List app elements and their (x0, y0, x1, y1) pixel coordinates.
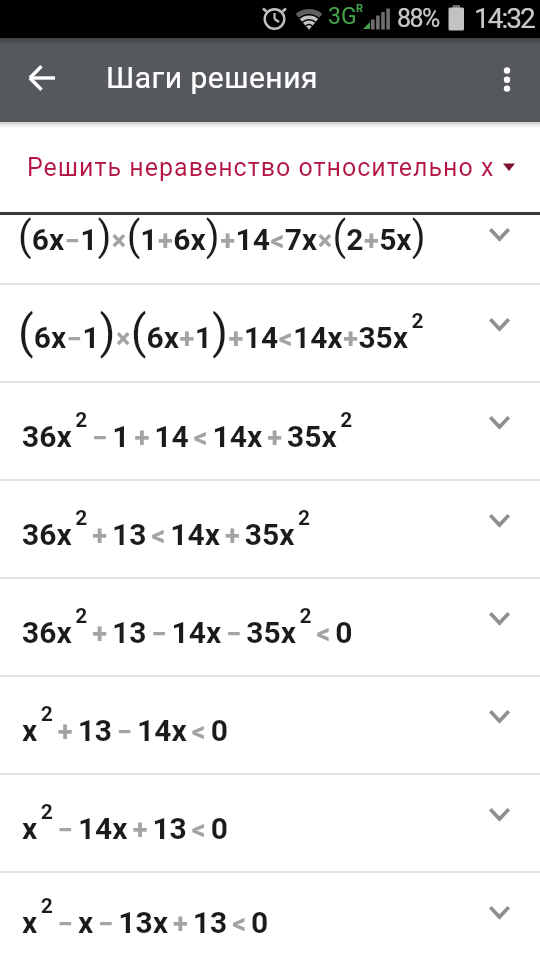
button[interactable]: x 2 + 13 − 14x < 0 (0, 677, 540, 773)
button[interactable]: (6x − 1) × (1 + 6x) + 14 < 7x × (2 + 5x) (0, 215, 540, 283)
staticText: (6x − 1) × (1 + 6x) + 14 < 7x × (2 + 5x) (18, 213, 426, 260)
button[interactable]: 36x 2 + 13 − 14x − 35x 2 < 0 (0, 579, 540, 675)
staticText: 88% (397, 4, 439, 33)
button[interactable] (488, 38, 540, 122)
staticText: 36x 2 − 1 + 14 < 14x + 35x 2 (22, 408, 353, 454)
staticText: 3G (328, 3, 357, 30)
staticText: Решить неравенство относительно x (27, 153, 495, 182)
button[interactable] (0, 38, 70, 122)
button[interactable]: x 2 − x − 13x + 13 < 0 (0, 873, 540, 960)
staticText: x 2 − 14x + 13 < 0 (22, 800, 228, 846)
button[interactable]: x 2 − 14x + 13 < 0 (0, 775, 540, 871)
button[interactable]: 36x 2 + 13 < 14x + 35x 2 (0, 481, 540, 577)
staticText: x 2 + 13 − 14x < 0 (22, 702, 228, 748)
button[interactable]: 36x 2 − 1 + 14 < 14x + 35x 2 (0, 383, 540, 479)
staticText: (6x − 1) × (6x + 1) + 14 < 14x + 35x 2 (18, 305, 424, 359)
staticText: 36x 2 + 13 − 14x − 35x 2 < 0 (22, 604, 353, 650)
staticText: Шаги решения (106, 60, 318, 95)
button[interactable]: (6x − 1) × (6x + 1) + 14 < 14x + 35x 2 (0, 285, 540, 381)
button[interactable]: Решить неравенство относительно x (0, 122, 540, 212)
staticText: 14:32 (474, 2, 534, 35)
staticText: x 2 − x − 13x + 13 < 0 (22, 894, 269, 940)
staticText: R (356, 2, 364, 15)
staticText: 36x 2 + 13 < 14x + 35x 2 (22, 506, 311, 552)
